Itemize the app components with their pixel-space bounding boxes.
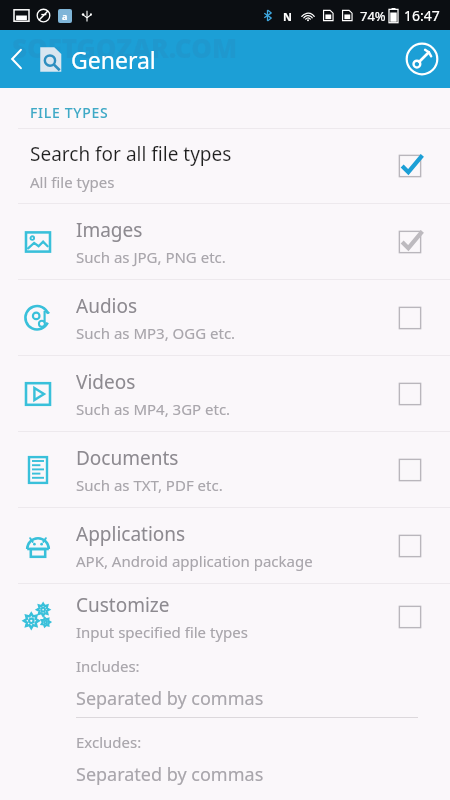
- staticText: Such as MP3, OGG etc.: [76, 323, 236, 343]
- staticText: 74%: [360, 7, 386, 25]
- button[interactable]: Documents: [0, 432, 450, 507]
- button[interactable]: Videos: [0, 356, 450, 431]
- staticText: Separated by commas: [76, 762, 264, 787]
- staticText: Excludes:: [76, 732, 142, 752]
- staticText: 16:47: [404, 6, 440, 25]
- staticText: N: [283, 9, 292, 22]
- button[interactable]: Audios: [0, 280, 450, 355]
- button[interactable]: Back: [0, 30, 34, 88]
- staticText: Such as TXT, PDF etc.: [76, 475, 223, 495]
- staticText: Such as JPG, PNG etc.: [76, 247, 226, 267]
- button[interactable]: Search for all file types: [0, 129, 450, 203]
- staticText: Applications: [76, 521, 186, 547]
- staticText: SOFTGOZAR.COM: [12, 30, 238, 65]
- button[interactable]: Settings: [394, 30, 450, 88]
- staticText: Includes:: [76, 656, 140, 676]
- staticText: APK, Android application package: [76, 551, 313, 571]
- staticText: Such as MP4, 3GP etc.: [76, 399, 231, 419]
- staticText: Videos: [76, 369, 136, 395]
- staticText: General: [71, 44, 156, 75]
- button[interactable]: Applications: [0, 508, 450, 583]
- staticText: Input specified file types: [76, 622, 248, 642]
- staticText: Audios: [76, 293, 138, 319]
- button[interactable]: Images: [0, 204, 450, 279]
- staticText: Documents: [76, 445, 179, 471]
- staticText: Separated by commas: [76, 686, 264, 711]
- button[interactable]: Customize: [0, 584, 450, 650]
- staticText: a: [62, 10, 68, 22]
- staticText: Customize: [76, 592, 170, 618]
- staticText: FILE TYPES: [30, 103, 109, 122]
- staticText: Images: [76, 217, 143, 243]
- staticText: All file types: [30, 172, 115, 192]
- staticText: Search for all file types: [30, 141, 232, 167]
